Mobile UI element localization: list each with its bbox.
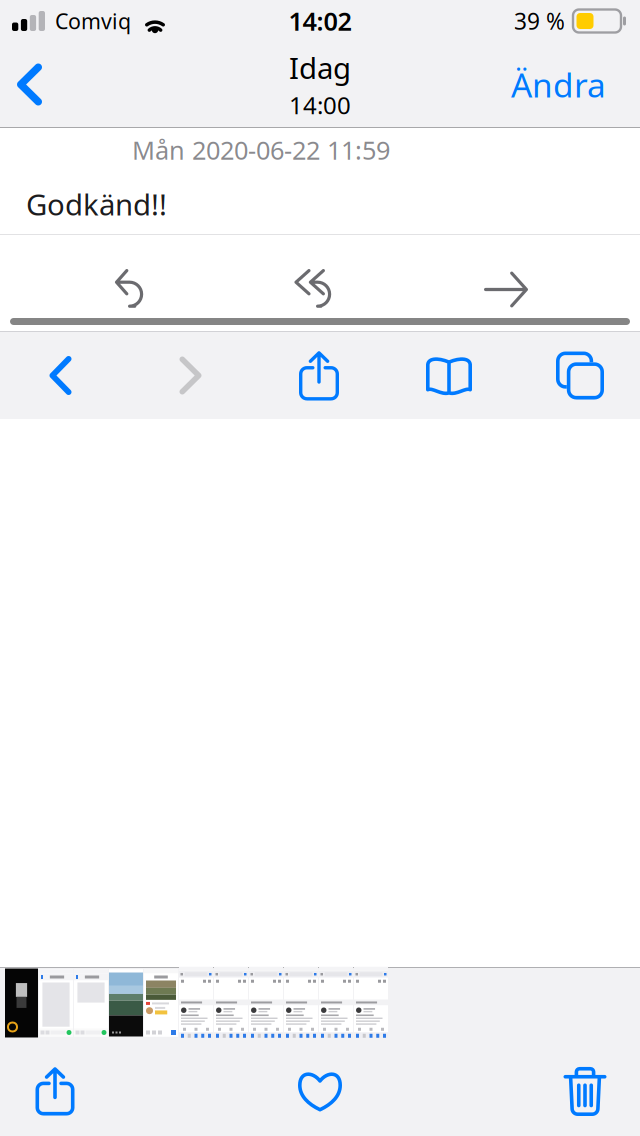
- button[interactable]: Ändra: [511, 42, 640, 127]
- staticText: Ändra: [511, 62, 606, 107]
- button[interactable]: Dela: [0, 1034, 110, 1136]
- staticText: Comviq: [55, 7, 131, 35]
- staticText: Mån 2020-06-22 11:59: [132, 133, 390, 167]
- button[interactable]: Bokmärken: [378, 332, 520, 419]
- button[interactable]: Tillbaka: [0, 42, 66, 127]
- button[interactable]: Dela: [260, 332, 378, 419]
- button[interactable]: Bakåt: [0, 332, 121, 419]
- button[interactable]: Framåt: [121, 332, 260, 419]
- button[interactable]: Svara alla: [268, 242, 372, 309]
- button[interactable]: Svara: [82, 242, 186, 309]
- staticText: 14:00: [289, 89, 351, 121]
- staticText: Idag: [289, 48, 351, 87]
- staticText: Godkänd!!: [26, 185, 167, 224]
- button[interactable]: Vidarebefordra: [454, 242, 558, 308]
- button[interactable]: Flikar: [520, 332, 640, 419]
- staticText: 39 %: [514, 6, 565, 36]
- staticText: 14:02: [288, 4, 351, 38]
- button[interactable]: Radera: [530, 1034, 640, 1136]
- button[interactable]: Favorit: [265, 1034, 375, 1136]
